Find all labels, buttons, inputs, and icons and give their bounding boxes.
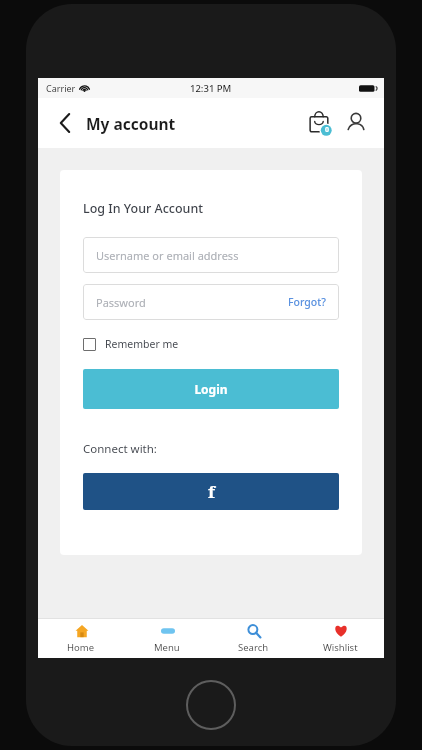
staticText: Username or email address [96,248,239,263]
staticText: Log In Your Account [83,200,204,217]
button[interactable]: Account [340,107,372,139]
button[interactable]: Back [52,110,176,136]
button[interactable]: Cart [304,107,336,139]
staticText: Search [238,641,269,654]
staticText: Forgot? [288,295,326,309]
button[interactable]: Search [210,618,297,658]
button[interactable]: Remember me [83,337,179,351]
staticText: Wishlist [323,641,358,654]
staticText: Menu [154,641,180,654]
staticText: Connect with: [83,441,157,457]
other: Back [52,110,78,136]
button[interactable]: Home [38,618,124,658]
button[interactable]: Login [83,369,339,409]
staticText: 12:31 PM [190,82,232,95]
button[interactable]: Username or email address [83,237,339,273]
staticText: Remember me [105,337,179,351]
staticText: Login [194,381,228,397]
staticText: Password [96,295,146,310]
staticText: 0 [325,125,330,135]
staticText: My account [86,113,176,134]
staticText: Home [67,641,95,654]
button[interactable]: Forgot? [288,295,326,309]
staticText: Carrier [46,82,76,94]
button[interactable]: Wishlist [297,618,384,658]
staticText: f [208,480,215,503]
button[interactable]: Menu [124,618,210,658]
button[interactable]: Connect with Facebook [83,473,339,510]
button[interactable]: Password [83,284,339,320]
